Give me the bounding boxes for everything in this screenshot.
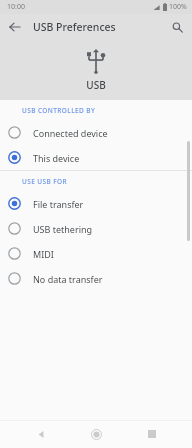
button[interactable]: Home xyxy=(81,420,111,448)
staticText: USE USB FOR xyxy=(22,177,68,186)
staticText: USB Preferences xyxy=(33,20,116,34)
button[interactable]: No data transfer xyxy=(0,266,192,291)
staticText: USB tethering xyxy=(33,223,93,235)
button[interactable]: Connected device xyxy=(0,120,192,145)
staticText: 10:00 xyxy=(7,2,25,12)
button[interactable]: Back xyxy=(26,420,56,448)
button[interactable]: File transfer xyxy=(0,191,192,216)
staticText: MIDI xyxy=(33,248,54,260)
button[interactable]: Recent apps xyxy=(137,420,167,448)
staticText: USB xyxy=(86,78,106,92)
button[interactable]: USB tethering xyxy=(0,216,192,241)
staticText: No data transfer xyxy=(33,273,103,285)
staticText: 100% xyxy=(169,2,187,12)
staticText: USB CONTROLLED BY xyxy=(22,106,96,115)
button[interactable]: Back xyxy=(4,16,26,38)
staticText: This device xyxy=(33,152,80,164)
button[interactable]: MIDI xyxy=(0,241,192,266)
button[interactable]: This device xyxy=(0,145,192,170)
button[interactable]: Search xyxy=(166,16,188,38)
staticText: Connected device xyxy=(33,127,108,139)
staticText: File transfer xyxy=(33,198,84,210)
